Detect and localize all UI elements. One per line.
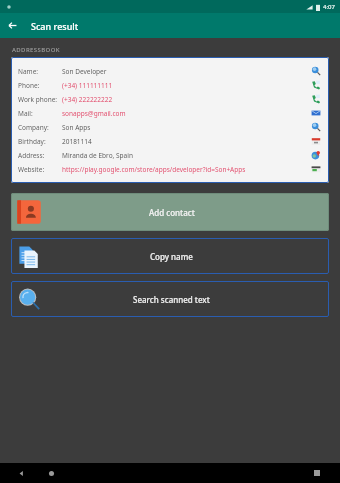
- staticText: Search scanned text: [133, 294, 210, 305]
- staticText: ADDRESSBOOK: [12, 46, 60, 54]
- button[interactable]: Search company: [309, 120, 322, 133]
- staticText: Son Apps: [62, 123, 91, 132]
- button[interactable]: Back: [11, 463, 31, 483]
- button[interactable]: Back: [0, 13, 25, 38]
- button[interactable]: Search name: [309, 64, 322, 77]
- staticText: (+34) 222222222: [62, 95, 113, 104]
- button[interactable]: Home: [41, 463, 61, 483]
- button[interactable]: Send mail: [309, 106, 322, 119]
- staticText: sonapps@gmail.com: [62, 109, 126, 118]
- button[interactable]: Copy name: [11, 238, 329, 274]
- button[interactable]: Add to calendar: [309, 134, 322, 147]
- button[interactable]: Call work phone: [309, 92, 322, 105]
- staticText: Scan result: [31, 20, 79, 32]
- staticText: Miranda de Ebro, Spain: [62, 151, 133, 160]
- staticText: Phone:: [18, 81, 40, 90]
- staticText: (+34) 111111111: [62, 81, 113, 90]
- staticText: 4:07: [323, 3, 335, 11]
- staticText: Copy name: [150, 251, 193, 262]
- staticText: 20181114: [62, 137, 92, 146]
- staticText: Name:: [18, 67, 39, 76]
- button[interactable]: Open map: [309, 148, 322, 161]
- button[interactable]: Search scanned text: [11, 281, 329, 317]
- staticText: https://play.google.com/store/apps/devel…: [62, 165, 246, 174]
- button[interactable]: Call phone: [309, 78, 322, 91]
- staticText: Mail:: [18, 109, 33, 118]
- button[interactable]: Name:: [11, 57, 329, 183]
- button[interactable]: Add contact: [11, 193, 329, 231]
- staticText: Address:: [18, 151, 45, 160]
- staticText: Son Developer: [62, 67, 107, 76]
- staticText: Company:: [18, 123, 49, 132]
- button[interactable]: Open website: [309, 162, 322, 175]
- button[interactable]: Recent apps: [307, 463, 327, 483]
- staticText: Work phone:: [18, 95, 58, 104]
- staticText: Add contact: [149, 207, 195, 218]
- staticText: Website:: [18, 165, 45, 174]
- staticText: Birthday:: [18, 137, 46, 146]
